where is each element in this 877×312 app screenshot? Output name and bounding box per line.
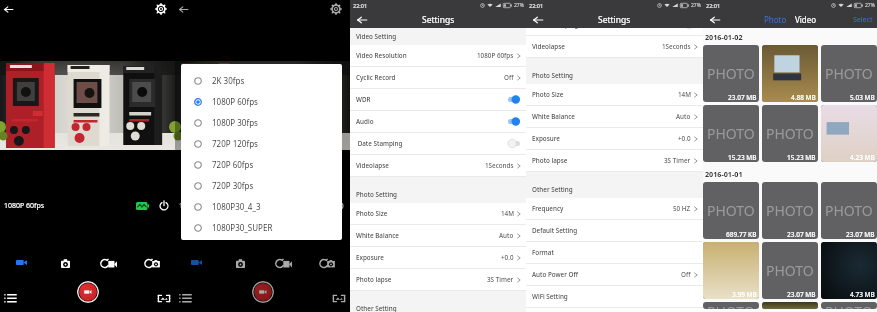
button[interactable]: Gallery xyxy=(332,293,346,304)
button[interactable]: 1080P 30fps xyxy=(181,112,342,133)
button[interactable]: Video xyxy=(791,14,821,25)
staticText: 27% xyxy=(691,2,701,9)
staticText: Cyclic Record xyxy=(356,73,396,82)
button[interactable]: Photo lapse xyxy=(526,150,703,172)
button[interactable]: Back xyxy=(2,3,15,16)
button[interactable]: Select xyxy=(853,15,877,25)
staticText: Settings xyxy=(422,14,455,26)
button[interactable]: Photo Size xyxy=(350,203,526,225)
button[interactable]: 720P 30fps xyxy=(181,175,342,196)
button[interactable]: Back xyxy=(708,13,722,27)
button[interactable]: Photo xyxy=(762,242,818,299)
button[interactable]: Settings xyxy=(155,3,167,15)
button[interactable]: Format xyxy=(526,242,703,264)
staticText: 2016-01-02 xyxy=(705,32,743,42)
button[interactable]: Photo xyxy=(762,302,818,309)
button[interactable]: 2K 30fps xyxy=(181,70,342,91)
button[interactable]: Photo xyxy=(821,182,877,239)
button[interactable]: Photo xyxy=(762,105,818,162)
button[interactable]: WiFi Setting xyxy=(526,286,703,308)
button[interactable]: List xyxy=(4,292,17,303)
button[interactable]: Power xyxy=(333,200,345,212)
button[interactable]: Photo mode xyxy=(236,258,245,268)
button[interactable]: Photo Size xyxy=(526,84,703,106)
staticText: 3S Timer xyxy=(664,156,691,165)
button[interactable]: Timer photo mode xyxy=(146,258,160,268)
button[interactable]: Video mode xyxy=(191,258,202,267)
staticText: 27% xyxy=(865,2,875,9)
button[interactable]: List xyxy=(179,292,192,303)
button[interactable]: WDR xyxy=(350,89,526,111)
button[interactable]: Date Stamping xyxy=(350,133,526,155)
staticText: 1080P 60fps xyxy=(212,96,258,107)
button[interactable]: White Balance xyxy=(350,225,526,247)
staticText: 23.07 MB xyxy=(846,230,875,239)
button[interactable]: Videolapse xyxy=(526,36,703,58)
button[interactable]: 1080P30_4_3 xyxy=(181,196,342,217)
button[interactable]: Timer video mode xyxy=(102,258,117,268)
button[interactable]: Settings xyxy=(330,3,342,15)
button[interactable]: Photo xyxy=(703,45,759,102)
button[interactable]: 720P 60fps xyxy=(181,154,342,175)
button[interactable]: Record xyxy=(77,281,99,303)
staticText: 23.07 MB xyxy=(787,290,816,299)
button[interactable]: Photo xyxy=(821,302,877,309)
button[interactable]: Date Stamping xyxy=(526,28,703,36)
button[interactable]: Exposure xyxy=(526,128,703,150)
staticText: 14M xyxy=(678,90,691,99)
button[interactable]: Gallery xyxy=(157,293,171,304)
staticText: Audio xyxy=(356,117,374,126)
button[interactable]: Timer photo mode xyxy=(321,258,335,268)
button[interactable]: Video mode xyxy=(16,258,27,267)
button[interactable]: Photo xyxy=(703,182,759,239)
button[interactable]: Cyclic Record xyxy=(350,67,526,89)
staticText: 22:01 xyxy=(706,2,721,9)
staticText: 22:01 xyxy=(353,2,368,9)
button[interactable]: Video Resolution xyxy=(350,45,526,67)
button[interactable]: Back xyxy=(177,3,190,16)
button[interactable]: Photo xyxy=(703,242,759,299)
button[interactable]: Photo xyxy=(703,105,759,162)
staticText: 1Seconds xyxy=(485,161,514,170)
staticText: Settings xyxy=(598,14,631,26)
staticText: 1080P30_4_3 xyxy=(212,201,261,212)
staticText: Photo Size xyxy=(532,90,564,99)
button[interactable]: Auto Power Off xyxy=(526,264,703,286)
button[interactable]: Photo xyxy=(762,182,818,239)
button[interactable]: Videolapse xyxy=(350,155,526,177)
button[interactable]: 1080P 60fps xyxy=(181,91,342,112)
button[interactable]: White Balance xyxy=(526,106,703,128)
button[interactable]: Back xyxy=(531,13,545,27)
staticText: Videolapse xyxy=(356,161,389,170)
staticText: Photo Setting xyxy=(532,71,573,80)
button[interactable]: Photo mode xyxy=(61,258,70,268)
staticText: PHOTO xyxy=(707,201,755,220)
button[interactable]: Exposure xyxy=(350,247,526,269)
staticText: PHOTO xyxy=(766,261,814,280)
button[interactable]: Photo lapse xyxy=(350,269,526,291)
button[interactable]: Photo xyxy=(760,14,791,25)
button[interactable]: Frequency xyxy=(526,198,703,220)
button[interactable]: Photo xyxy=(703,302,759,309)
button[interactable]: Default Setting xyxy=(526,220,703,242)
button[interactable]: Power xyxy=(158,200,170,212)
button[interactable]: Photo xyxy=(821,45,877,102)
staticText: Select xyxy=(853,15,873,25)
button[interactable]: Record xyxy=(252,281,274,303)
staticText: Frequency xyxy=(532,204,564,213)
button[interactable]: Back xyxy=(355,13,369,27)
staticText: Photo lapse xyxy=(532,156,568,165)
button[interactable]: Timer video mode xyxy=(277,258,292,268)
staticText: Videolapse xyxy=(532,42,565,51)
staticText: White Balance xyxy=(356,231,399,240)
staticText: PHOTO xyxy=(707,124,755,143)
button[interactable]: 720P 120fps xyxy=(181,133,342,154)
button[interactable]: Photo xyxy=(821,242,877,299)
staticText: 1Seconds xyxy=(662,42,691,51)
staticText: 23.07 MB xyxy=(728,93,757,102)
button[interactable]: Audio xyxy=(350,111,526,133)
button[interactable]: Photo xyxy=(762,45,818,102)
button[interactable]: Photo xyxy=(821,105,877,162)
button[interactable]: 1080P30_SUPER xyxy=(181,217,342,238)
staticText: Default Setting xyxy=(532,226,578,235)
